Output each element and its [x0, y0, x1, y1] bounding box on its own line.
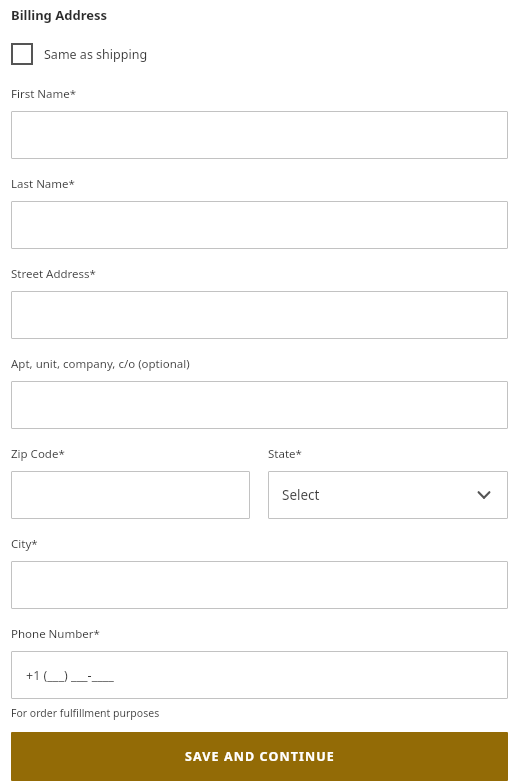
button[interactable] — [11, 201, 508, 249]
staticText: For order fulfillment purposes — [11, 706, 160, 720]
button[interactable] — [11, 561, 508, 609]
button[interactable] — [11, 471, 250, 519]
button[interactable] — [11, 291, 508, 339]
staticText: First Name* — [11, 86, 77, 102]
button[interactable]: Select — [268, 471, 508, 519]
other: Open state list — [475, 486, 493, 504]
staticText: Street Address* — [11, 266, 96, 282]
staticText: Last Name* — [11, 176, 75, 192]
staticText: State* — [268, 446, 302, 462]
button[interactable] — [11, 111, 508, 159]
staticText: SAVE AND CONTINUE — [185, 748, 335, 765]
staticText: City* — [11, 536, 38, 552]
staticText: Phone Number* — [11, 626, 100, 642]
button[interactable]: Same as shipping — [11, 41, 148, 67]
button[interactable]: +1 (___) ___-____ — [11, 651, 508, 699]
button[interactable] — [11, 381, 508, 429]
staticText: Billing Address — [11, 6, 108, 24]
staticText: Apt, unit, company, c/o (optional) — [11, 356, 190, 372]
staticText: Select — [282, 486, 320, 504]
staticText: Same as shipping — [44, 46, 148, 63]
button[interactable]: SAVE AND CONTINUE — [11, 732, 508, 781]
staticText: +1 (___) ___-____ — [26, 667, 114, 684]
staticText: Zip Code* — [11, 446, 65, 462]
